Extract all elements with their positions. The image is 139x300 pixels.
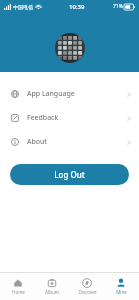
staticText: Mine: [116, 289, 127, 295]
button[interactable]: Log Out: [10, 164, 129, 185]
staticText: 中国电信: [13, 4, 33, 10]
staticText: 10:39: [69, 3, 85, 11]
staticText: Home: [12, 289, 25, 295]
button[interactable]: App Language: [0, 82, 139, 106]
staticText: Discover: [78, 289, 97, 295]
button[interactable]: Mine: [104, 273, 138, 300]
staticText: Log Out: [54, 169, 85, 180]
button[interactable]: About: [0, 130, 139, 154]
staticText: Album: [45, 289, 59, 295]
staticText: About: [27, 137, 47, 147]
button[interactable]: Album: [35, 273, 69, 300]
staticText: 71%: [113, 3, 123, 10]
button[interactable]: Profile photo: [55, 33, 85, 63]
staticText: App Language: [27, 89, 75, 99]
staticText: Feedback: [27, 113, 59, 123]
button[interactable]: Home: [1, 273, 35, 300]
button[interactable]: Discover: [70, 273, 104, 300]
button[interactable]: Feedback: [0, 106, 139, 130]
